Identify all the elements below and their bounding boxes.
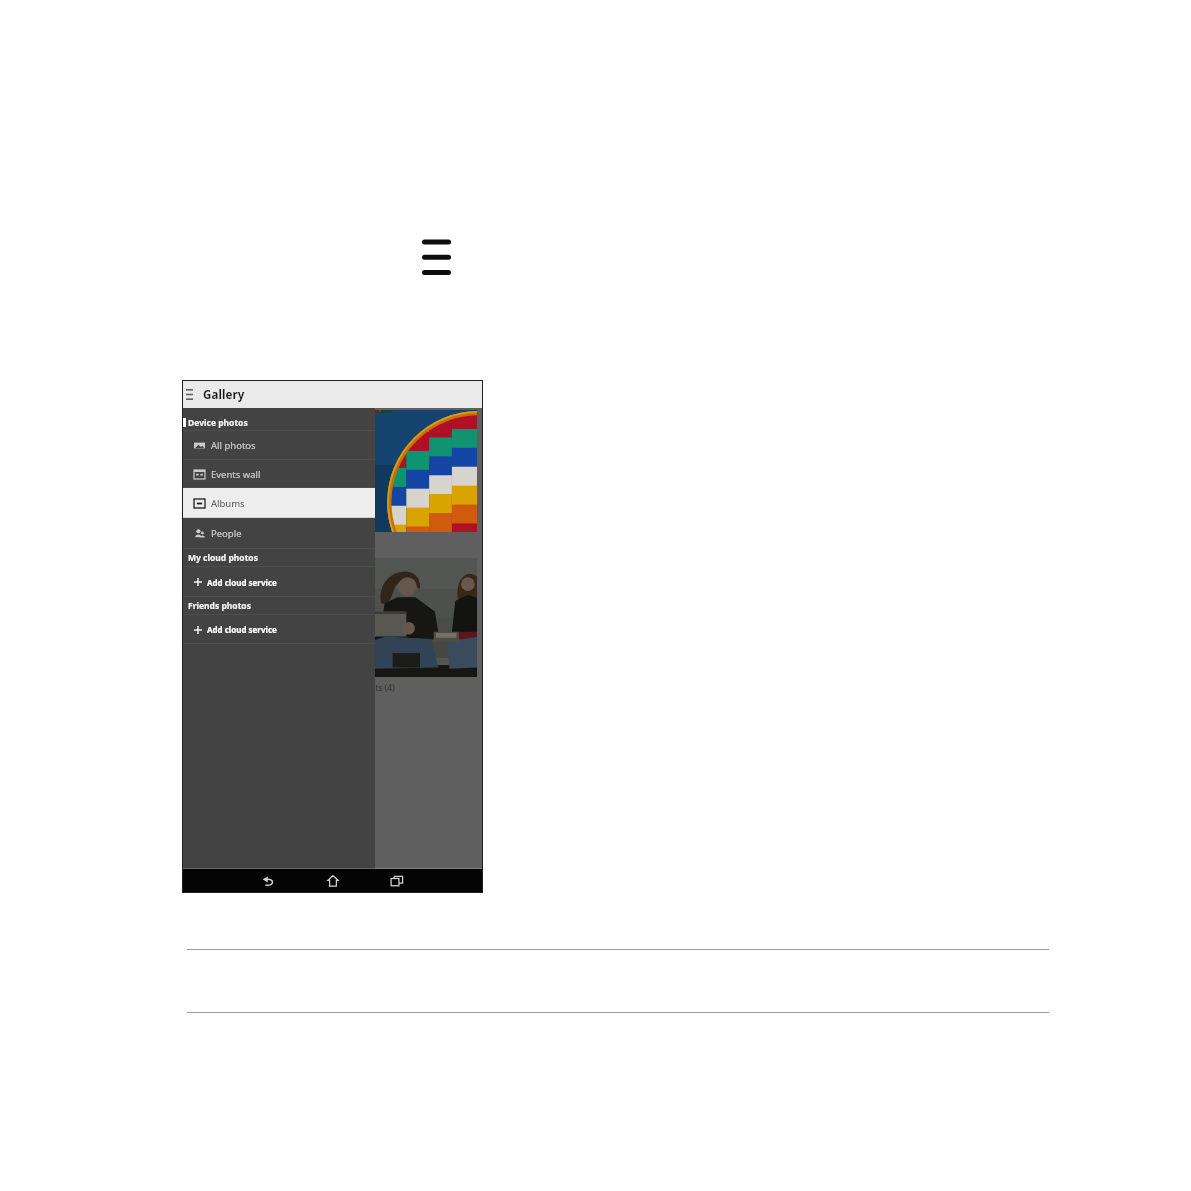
button[interactable]: All photos [183, 431, 375, 460]
button[interactable]: Home [319, 869, 347, 892]
staticText: Add cloud service [207, 577, 277, 588]
staticText: hots (4) [365, 682, 395, 694]
staticText: Albums [211, 497, 245, 510]
button[interactable]: Recent apps [383, 869, 411, 892]
button[interactable]: Open navigation [183, 381, 202, 408]
staticText: People [211, 527, 242, 540]
button[interactable]: Navigation drawer menu [414, 228, 459, 284]
staticText: Gallery [203, 387, 245, 403]
staticText: My cloud photos [188, 552, 258, 564]
button[interactable]: Events wall [183, 460, 375, 488]
button[interactable]: Add cloud service [183, 567, 375, 597]
button[interactable]: Back [254, 869, 282, 892]
staticText: All photos [211, 439, 256, 452]
staticText: Add cloud service [207, 624, 277, 635]
staticText: Device photos [188, 417, 248, 429]
staticText: Friends photos [188, 600, 251, 612]
staticText: Events wall [211, 468, 261, 481]
button[interactable]: Add cloud service [183, 615, 375, 644]
button[interactable]: Albums [183, 488, 375, 518]
button[interactable]: People [183, 518, 375, 549]
